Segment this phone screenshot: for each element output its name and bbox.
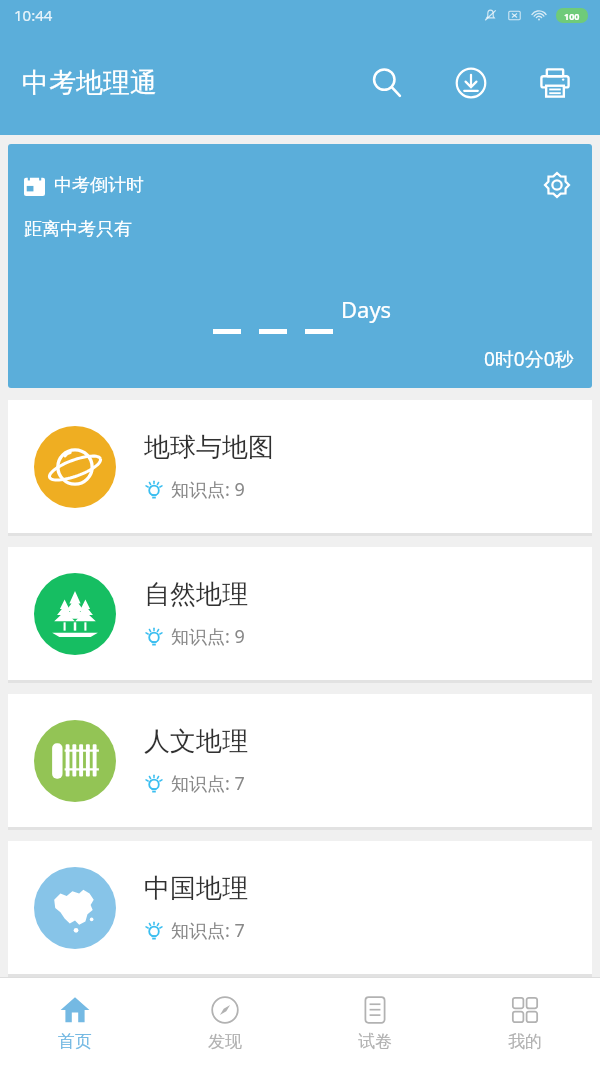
button[interactable]: Settings: [540, 168, 574, 202]
staticText: 知识点: 9: [171, 477, 245, 502]
staticText: 地球与地图: [144, 431, 274, 464]
button[interactable]: 中考倒计时: [8, 144, 592, 388]
staticText: 知识点: 9: [171, 624, 245, 649]
button[interactable]: 地球与地图: [8, 400, 592, 533]
staticText: 自然地理: [144, 578, 248, 611]
staticText: 中考地理通: [22, 66, 157, 100]
button[interactable]: 自然地理: [8, 547, 592, 680]
button[interactable]: Search: [364, 60, 410, 106]
staticText: 10:44: [14, 5, 53, 25]
staticText: 中国地理: [144, 872, 248, 905]
button[interactable]: Home: [0, 978, 150, 1067]
staticText: 知识点: 7: [171, 918, 245, 943]
button[interactable]: Download: [448, 60, 494, 106]
staticText: 100: [564, 10, 580, 22]
button[interactable]: 人文地理: [8, 694, 592, 827]
staticText: 距离中考只有: [24, 218, 132, 241]
button[interactable]: Discover: [150, 978, 300, 1067]
staticText: 知识点: 7: [171, 771, 245, 796]
staticText: 中考倒计时: [54, 174, 144, 197]
staticText: 发现: [208, 1031, 242, 1052]
button[interactable]: Papers: [300, 978, 450, 1067]
button[interactable]: Grid: [450, 978, 600, 1067]
staticText: 试卷: [358, 1031, 392, 1052]
staticText: 0时0分0秒: [484, 346, 574, 372]
button[interactable]: 中国地理: [8, 841, 592, 974]
staticText: 首页: [58, 1031, 92, 1052]
button[interactable]: Print: [532, 60, 578, 106]
staticText: Days: [341, 294, 392, 324]
staticText: 人文地理: [144, 725, 248, 758]
staticText: 我的: [508, 1031, 542, 1052]
